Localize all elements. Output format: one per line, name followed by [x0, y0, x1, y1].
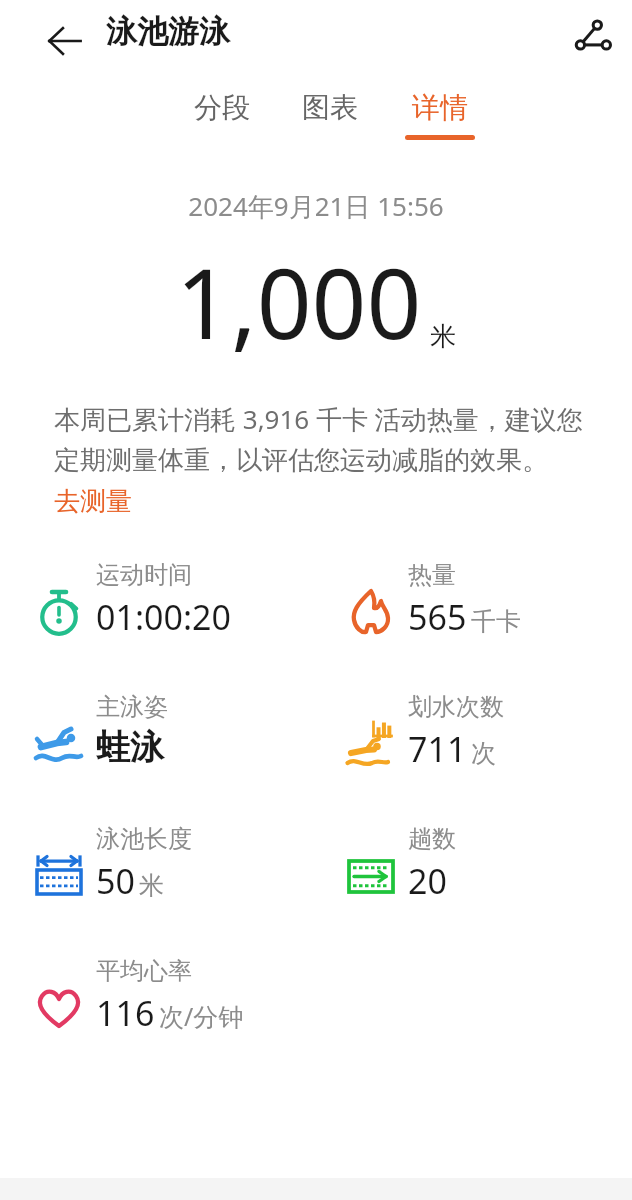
staticText: 1,000	[176, 236, 422, 367]
staticText: 次	[471, 738, 496, 769]
staticText: 详情	[412, 90, 468, 125]
staticText: 图表	[302, 90, 358, 125]
staticText: 20	[408, 858, 447, 904]
staticText: 热量	[408, 560, 456, 590]
button[interactable]: 划水次数	[346, 692, 632, 772]
button[interactable]: 主泳姿	[34, 692, 312, 769]
button[interactable]: 运动时间	[34, 560, 312, 640]
button[interactable]: 平均心率	[34, 956, 312, 1036]
staticText: 划水次数	[408, 692, 504, 722]
staticText: 去测量	[54, 485, 132, 518]
staticText: 565	[408, 594, 467, 640]
button[interactable]: 图表	[280, 90, 380, 164]
staticText: 蛙泳	[96, 726, 164, 769]
staticText: 本周已累计消耗 3,916 千卡 活动热量，建议您定期测量体重，以评估您运动减脂…	[54, 401, 596, 477]
staticText: 泳池游泳	[106, 12, 230, 51]
staticText: 主泳姿	[96, 692, 168, 722]
staticText: 2024年9月21日 15:56	[0, 188, 632, 224]
staticText: 米	[430, 320, 456, 353]
staticText: 50	[96, 858, 135, 904]
staticText: 116	[96, 990, 155, 1036]
staticText: 平均心率	[96, 956, 192, 986]
button[interactable]: Share	[564, 8, 622, 66]
button[interactable]: 热量	[346, 560, 632, 640]
staticText: 运动时间	[96, 560, 192, 590]
button[interactable]: 去测量	[54, 485, 132, 518]
button[interactable]: 分段	[172, 90, 272, 164]
staticText: 千卡	[471, 606, 521, 637]
staticText: 趟数	[408, 824, 456, 854]
button[interactable]: 详情	[390, 90, 490, 164]
button[interactable]: 趟数	[346, 824, 632, 904]
staticText: 次/分钟	[159, 999, 244, 1033]
button[interactable]: 泳池长度	[34, 824, 312, 904]
staticText: 01:00:20	[96, 594, 231, 640]
staticText: 711	[408, 726, 467, 772]
staticText: 泳池长度	[96, 824, 192, 854]
button[interactable]: Back	[38, 14, 92, 68]
staticText: 米	[139, 870, 164, 901]
staticText: 分段	[194, 90, 250, 125]
